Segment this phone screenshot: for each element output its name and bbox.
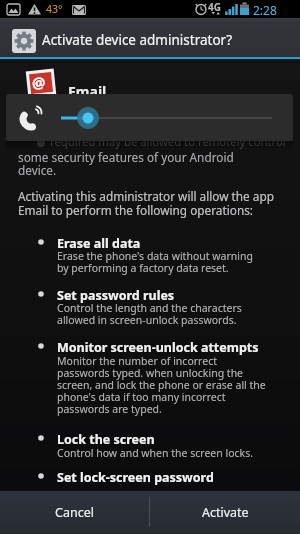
staticText: @ <box>31 71 47 93</box>
button[interactable]: Activate <box>150 490 300 534</box>
staticText: Set password rules <box>57 287 175 304</box>
staticText: screen, and lock the phone or erase all … <box>57 378 266 392</box>
staticText: phone's data if too many incorrect <box>57 390 226 404</box>
staticText: some security features of your Android <box>18 149 234 165</box>
staticText: 43° <box>46 2 63 16</box>
staticText: device. <box>18 162 57 178</box>
staticText: Email <box>68 82 107 101</box>
staticText: Control how and when the screen locks. <box>57 446 253 460</box>
staticText: Cancel <box>55 504 94 521</box>
staticText: 2:28 <box>253 2 277 18</box>
staticText: Email to perform the following operation… <box>18 202 253 218</box>
staticText: Erase the phone's data without warning <box>57 249 253 263</box>
staticText: required may be allowed to remotely cont… <box>50 134 286 149</box>
staticText: Monitor the number of incorrect <box>57 354 217 368</box>
staticText: Lock the screen <box>57 431 155 448</box>
staticText: passwords typed. when unlocking the <box>57 366 244 380</box>
staticText: allowed in screen-unlock passwords. <box>57 313 237 327</box>
button[interactable]: Cancel <box>0 490 149 534</box>
staticText: Monitor screen-unlock attempts <box>57 339 259 356</box>
staticText: Set lock-screen password <box>57 469 214 486</box>
staticText: Erase all data <box>57 235 141 252</box>
staticText: Activating this administrator will allow… <box>18 188 274 204</box>
staticText: by performing a factory data reset. <box>57 261 229 275</box>
staticText: passwords are typed. <box>57 402 162 416</box>
staticText: Activate device administrator? <box>42 31 232 49</box>
staticText: 4G <box>208 0 221 14</box>
staticText: Activate <box>202 504 249 521</box>
staticText: Control the length and the characters <box>57 301 242 315</box>
